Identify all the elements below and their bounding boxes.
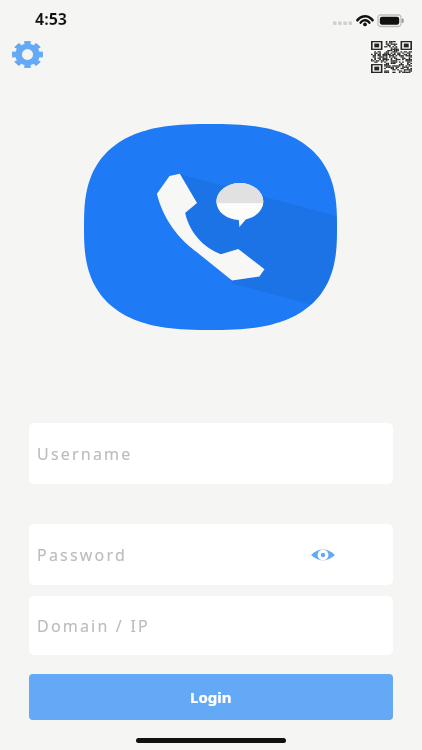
staticText: 4:53 (35, 8, 67, 30)
button[interactable]: Password (29, 524, 393, 585)
staticText: Domain / IP (37, 615, 150, 637)
button[interactable]: Domain / IP (29, 596, 393, 655)
button[interactable]: Login (29, 674, 393, 720)
button[interactable]: Settings (6, 36, 48, 72)
button[interactable]: Username (29, 423, 393, 484)
staticText: Login (190, 687, 232, 707)
button[interactable]: Scan QR code (371, 41, 412, 73)
button[interactable]: Show password (309, 541, 337, 569)
staticText: Username (37, 443, 133, 465)
staticText: Password (37, 544, 127, 566)
